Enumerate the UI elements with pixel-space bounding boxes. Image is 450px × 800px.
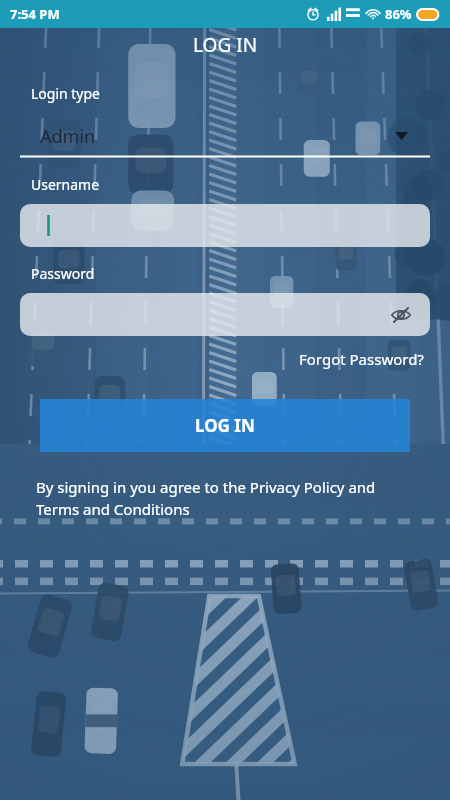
button[interactable]: Show password: [20, 293, 430, 336]
button[interactable]: LOG IN: [40, 399, 410, 452]
staticText: Password: [31, 264, 95, 283]
staticText: 86%: [385, 5, 412, 23]
staticText: By signing in you agree to the Privacy P…: [36, 477, 376, 497]
staticText: Terms and Conditions: [36, 499, 190, 519]
staticText: Login type: [31, 84, 101, 103]
staticText: LOG IN: [193, 32, 258, 58]
staticText: Forgot Password?: [299, 349, 424, 369]
button[interactable]: Show password: [386, 300, 416, 330]
staticText: Username: [31, 175, 100, 194]
staticText: LOG IN: [195, 414, 255, 437]
button[interactable]: Forgot Password?: [293, 347, 430, 371]
staticText: 7:54 PM: [10, 5, 60, 23]
button[interactable]: Admin: [20, 117, 430, 155]
button[interactable]: [20, 204, 430, 247]
staticText: Admin: [40, 124, 96, 149]
